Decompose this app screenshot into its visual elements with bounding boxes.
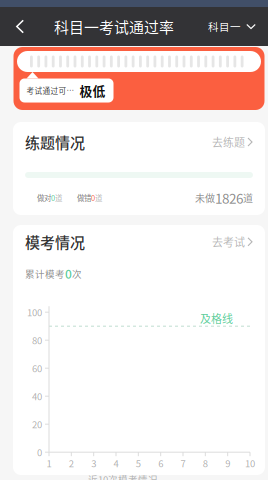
- staticText: 60: [32, 361, 42, 375]
- staticText: 1: [46, 456, 51, 470]
- staticText: 道: [243, 190, 253, 205]
- staticText: 未做: [195, 190, 215, 205]
- button[interactable]: 返回: [0, 7, 36, 46]
- staticText: 6: [158, 456, 163, 470]
- button[interactable]: 切换科目: [208, 7, 268, 46]
- staticText: 练题情况: [25, 131, 85, 153]
- staticText: 累计模考: [25, 267, 65, 280]
- staticText: 80: [32, 333, 42, 347]
- button[interactable]: 去考试: [212, 233, 253, 251]
- staticText: 0: [65, 265, 72, 282]
- staticText: 考试通过可能性: [26, 85, 78, 96]
- staticText: 及格线: [200, 310, 233, 326]
- staticText: 0: [91, 192, 95, 203]
- staticText: 做对: [37, 192, 51, 203]
- staticText: 0: [51, 192, 55, 203]
- staticText: 近10次模考情况: [88, 472, 158, 480]
- staticText: 10: [245, 456, 255, 470]
- staticText: 8: [203, 456, 208, 470]
- staticText: 5: [136, 456, 141, 470]
- staticText: 100: [27, 305, 42, 319]
- staticText: 次: [72, 267, 82, 280]
- staticText: 3: [91, 456, 96, 470]
- staticText: 2: [69, 456, 74, 470]
- staticText: 4: [113, 456, 118, 470]
- staticText: 做错: [77, 192, 91, 203]
- staticText: 科目一: [208, 19, 241, 34]
- staticText: 模考情况: [25, 231, 85, 253]
- button[interactable]: 去练题: [212, 133, 253, 151]
- staticText: 1826: [215, 188, 243, 207]
- staticText: 40: [32, 389, 42, 403]
- staticText: 9: [225, 456, 230, 470]
- staticText: 极低: [79, 81, 105, 100]
- staticText: 道: [95, 192, 102, 203]
- staticText: 0: [37, 445, 42, 459]
- staticText: 去练题: [212, 134, 245, 150]
- staticText: 去考试: [212, 234, 245, 250]
- staticText: 道: [55, 192, 62, 203]
- staticText: 20: [32, 417, 42, 431]
- staticText: 7: [180, 456, 185, 470]
- staticText: 科目一考试通过率: [54, 16, 174, 37]
